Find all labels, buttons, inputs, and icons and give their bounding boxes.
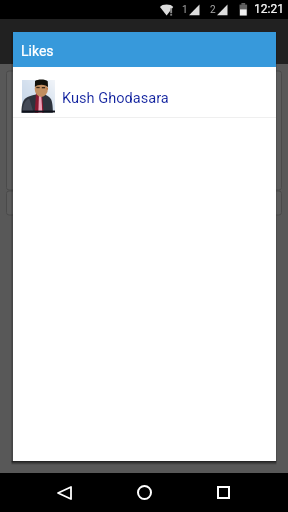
staticText: 2 [210,4,216,16]
staticText: 1 [182,4,188,16]
button[interactable]: Likes [13,32,276,67]
button[interactable]: Back [40,473,88,512]
button[interactable]: Kush Ghodasara [13,67,276,117]
staticText: Likes [21,43,54,59]
button[interactable]: Home [120,473,168,512]
staticText: 12:21 [254,2,284,16]
button[interactable]: Recent apps [199,473,247,512]
staticText: Kush Ghodasara [62,89,169,106]
